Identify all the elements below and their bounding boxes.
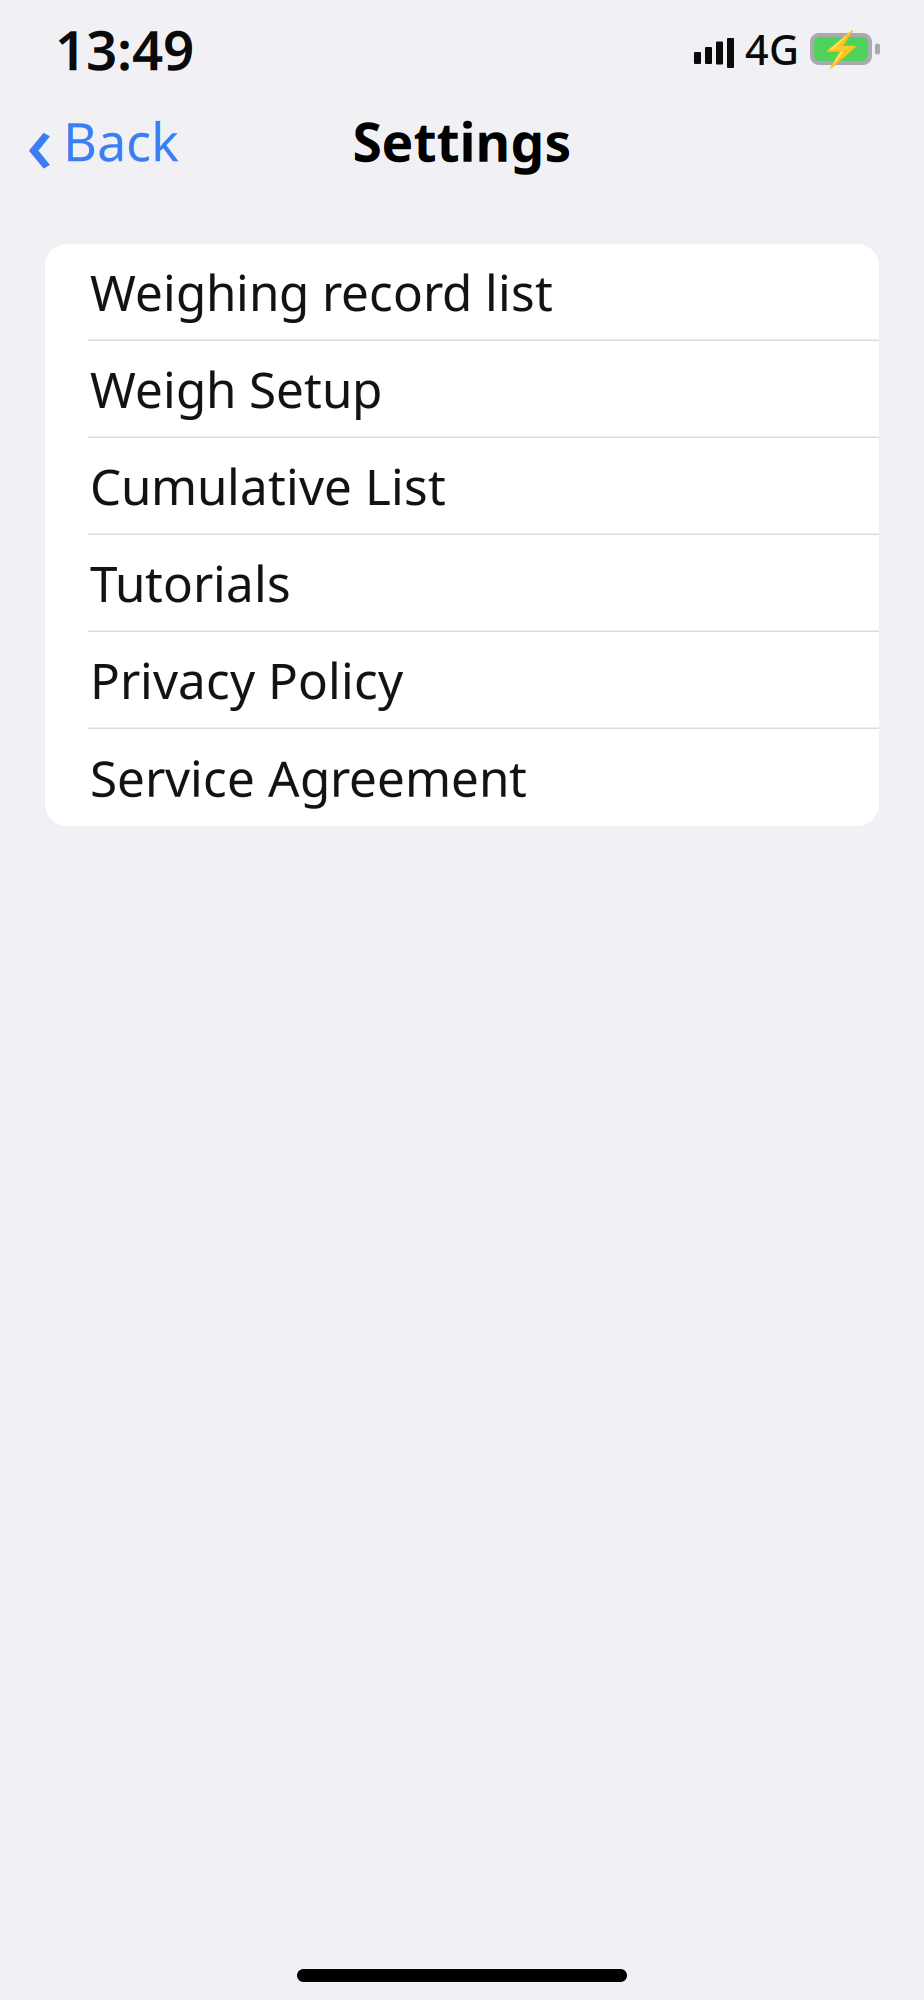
staticText: Tutorials: [90, 550, 291, 615]
staticText: Back: [63, 106, 179, 176]
button[interactable]: Privacy Policy: [45, 632, 879, 729]
staticText: Privacy Policy: [90, 647, 403, 712]
button[interactable]: Weighing record list: [45, 244, 879, 341]
staticText: ‹: [26, 86, 53, 196]
staticText: 13:49: [55, 13, 194, 85]
staticText: ⚡: [819, 29, 862, 69]
staticText: Settings: [352, 106, 571, 176]
staticText: Service Agreement: [90, 745, 527, 810]
button[interactable]: ‹: [0, 103, 199, 179]
button[interactable]: Weigh Setup: [45, 341, 879, 438]
staticText: Weigh Setup: [90, 356, 382, 421]
staticText: Cumulative List: [90, 453, 446, 518]
button[interactable]: Cumulative List: [45, 438, 879, 535]
staticText: Weighing record list: [90, 259, 553, 324]
button[interactable]: Tutorials: [45, 535, 879, 632]
button[interactable]: Service Agreement: [45, 729, 879, 826]
staticText: 4G: [745, 22, 799, 76]
